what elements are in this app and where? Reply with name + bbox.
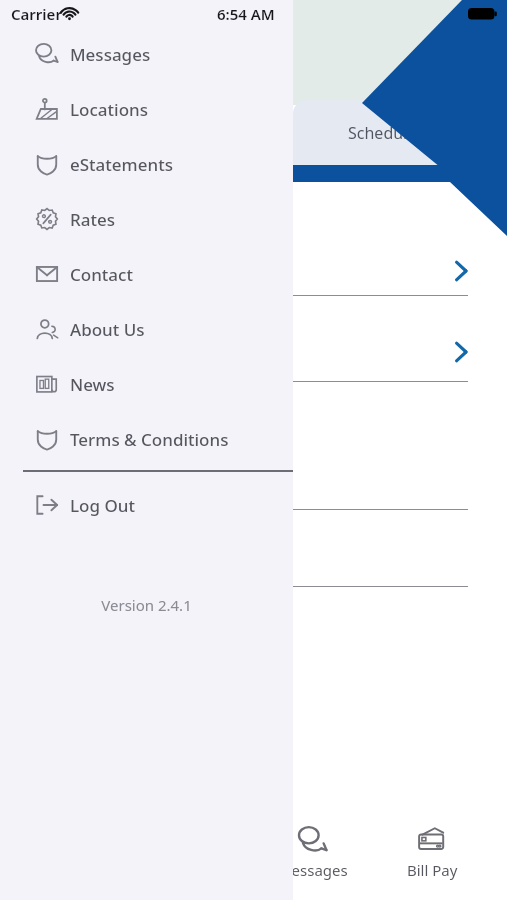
staticText: Terms & Conditions (70, 428, 229, 451)
staticText: Messages (70, 43, 151, 66)
button[interactable]: eStatements (0, 141, 293, 187)
staticText: News (70, 373, 115, 396)
button[interactable]: Messages (0, 31, 293, 77)
button[interactable]: Locations (0, 86, 293, 132)
staticText: Bill Pay (407, 860, 458, 880)
button[interactable]: Terms & Conditions (0, 416, 293, 462)
button[interactable]: Rates (0, 196, 293, 242)
button[interactable]: Open details (380, 324, 490, 380)
staticText: Contact (70, 263, 133, 286)
staticText: Version 2.4.1 (0, 595, 293, 615)
button[interactable]: About Us (0, 306, 293, 352)
staticText: Messages (278, 860, 348, 880)
staticText: Log Out (70, 494, 135, 517)
staticText: Carrier (11, 4, 62, 24)
button[interactable]: Messages (263, 826, 363, 890)
button[interactable]: Bill Pay (382, 826, 482, 890)
staticText: Scheduled (348, 122, 427, 144)
staticText: eStatements (70, 153, 173, 176)
button[interactable]: News (0, 361, 293, 407)
button[interactable]: Scheduled (302, 110, 472, 156)
staticText: Locations (70, 98, 148, 121)
button[interactable]: Open details (380, 243, 490, 299)
staticText: About Us (70, 318, 145, 341)
button[interactable]: Log Out (0, 482, 293, 528)
staticText: 6:54 AM (217, 4, 275, 24)
staticText: Rates (70, 208, 115, 231)
button[interactable]: Contact (0, 251, 293, 297)
